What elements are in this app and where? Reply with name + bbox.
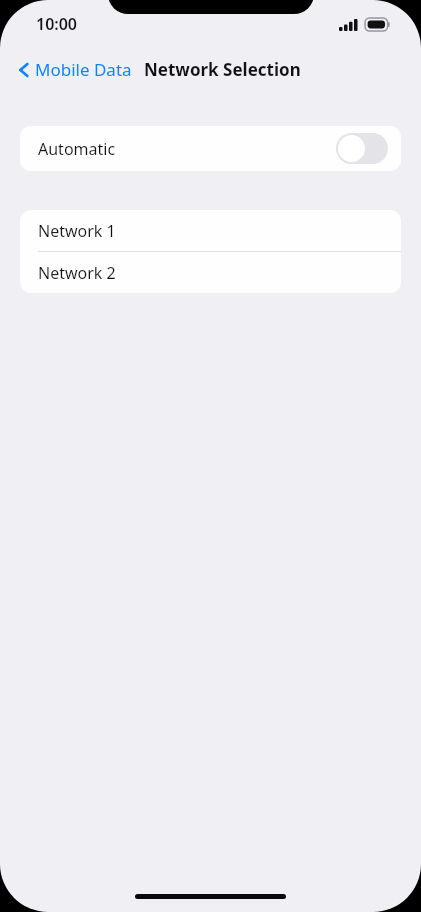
button[interactable]: Network 1 [20, 210, 401, 251]
staticText: Network 1 [38, 220, 116, 242]
button[interactable]: Back [14, 54, 136, 85]
button[interactable]: Network 2 [20, 252, 401, 293]
staticText: Network 2 [38, 262, 116, 284]
button[interactable]: Automatic network selection [336, 133, 388, 164]
button[interactable]: Automatic [20, 126, 401, 171]
other: Back [18, 60, 30, 80]
staticText: Automatic [38, 138, 116, 160]
staticText: Network Selection [144, 58, 301, 81]
staticText: Mobile Data [35, 58, 132, 81]
staticText: 10:00 [36, 13, 78, 35]
